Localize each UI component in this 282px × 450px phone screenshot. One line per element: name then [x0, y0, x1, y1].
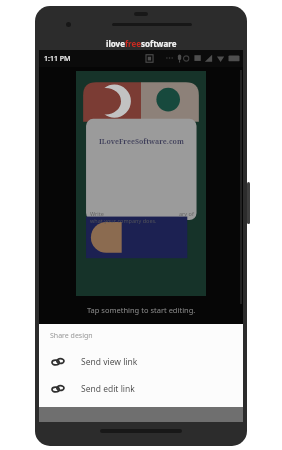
- button[interactable]: ILoveFreeSoftware.com: [76, 71, 206, 296]
- staticText: Write: [90, 210, 104, 217]
- other: Link: [52, 356, 64, 368]
- staticText: ilovefreesoftware: [106, 38, 177, 49]
- button[interactable]: Link: [39, 348, 243, 375]
- staticText: 1:11 PM: [44, 54, 71, 64]
- staticText: ILoveFreeSoftware.com: [99, 137, 184, 147]
- staticText: what your company does.: [90, 217, 157, 224]
- staticText: ary of: [179, 210, 194, 217]
- staticText: Send view link: [81, 356, 138, 368]
- staticText: Tap something to start editing.: [87, 305, 196, 315]
- button[interactable]: Link: [39, 375, 243, 402]
- staticText: Share design: [50, 331, 93, 341]
- other: Link: [52, 383, 64, 395]
- staticText: Send edit link: [81, 383, 135, 395]
